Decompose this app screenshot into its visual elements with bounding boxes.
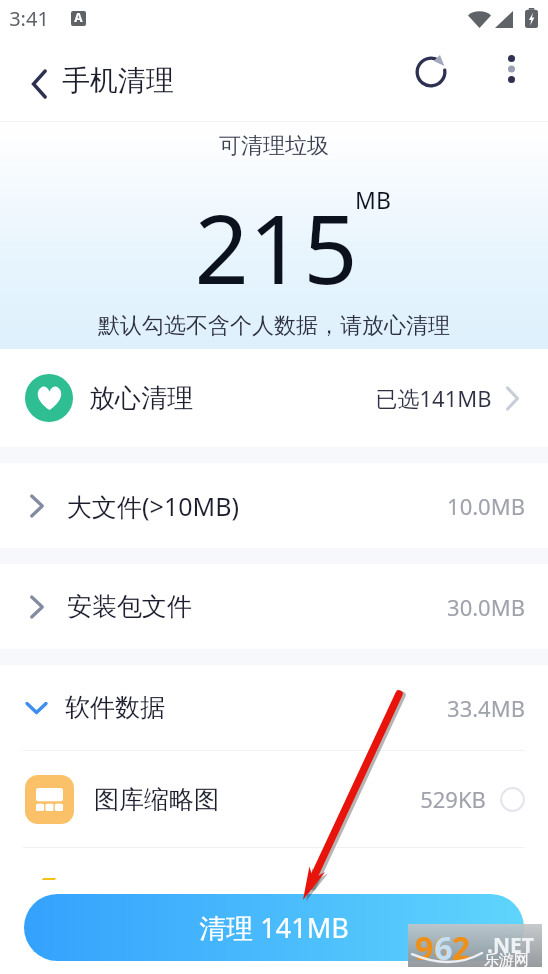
staticText: 放心清理 <box>89 382 193 415</box>
staticText: 软件数据 <box>65 692 165 723</box>
button[interactable]: More options <box>487 45 535 93</box>
staticText: 清理 141MB <box>199 909 349 946</box>
staticText: 33.4MB <box>447 693 525 723</box>
button[interactable]: 安装包文件 <box>0 564 548 649</box>
button[interactable]: Refresh <box>407 48 455 96</box>
staticText: .NET <box>487 931 534 960</box>
staticText: 手机清理 <box>62 63 174 98</box>
staticText: 30.0MB <box>447 592 525 622</box>
staticText: 可清理垃圾 <box>219 132 329 160</box>
button[interactable]: 大文件(>10MB) <box>0 463 548 548</box>
staticText: 安装包文件 <box>67 591 192 622</box>
button[interactable]: 放心清理 <box>0 349 548 447</box>
staticText: 图库缩略图 <box>94 784 219 815</box>
staticText: 10.0MB <box>447 491 525 521</box>
staticText: 215 <box>194 182 358 311</box>
staticText: 乐游网 <box>484 951 529 970</box>
staticText: 大文件(>10MB) <box>67 489 239 523</box>
other: Back <box>32 71 47 97</box>
staticText: 962 <box>415 926 470 969</box>
staticText: A <box>74 11 83 24</box>
button[interactable]: Back <box>0 56 186 111</box>
button[interactable]: 清理 141MB <box>24 894 524 961</box>
button[interactable]: 图库缩略图 <box>0 751 548 847</box>
button[interactable]: 软件数据 <box>0 665 548 750</box>
staticText: 6 <box>434 926 453 969</box>
staticText: 已选141MB <box>375 383 492 413</box>
staticText: 默认勾选不含个人数据，请放心清理 <box>98 312 450 340</box>
staticText: 529KB <box>420 784 486 814</box>
staticText: MB <box>355 184 391 215</box>
staticText: 3:41 <box>9 5 49 32</box>
